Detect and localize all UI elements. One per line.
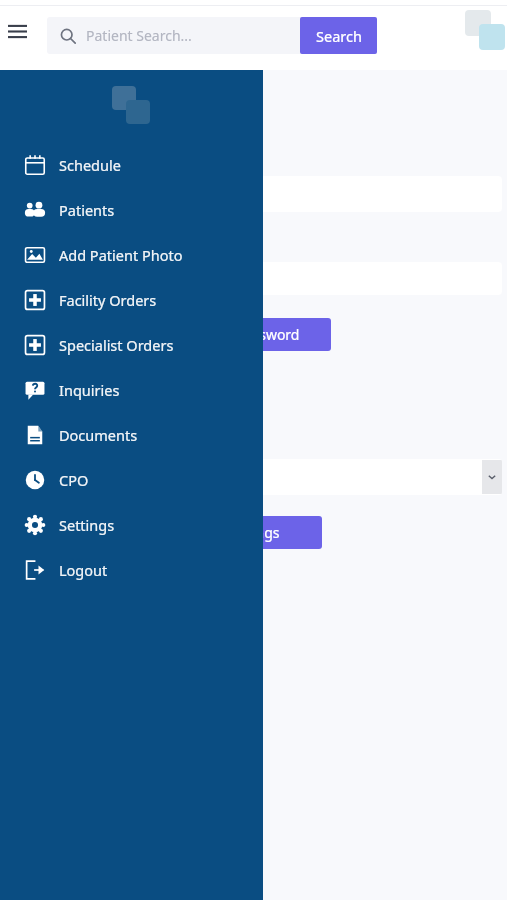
button[interactable]: Search	[300, 17, 377, 54]
button[interactable]: Schedule	[0, 142, 263, 187]
staticText: Patient Search...	[86, 26, 192, 45]
button[interactable]	[150, 176, 502, 212]
button[interactable]: Documents	[0, 412, 263, 457]
staticText: Schedule	[59, 155, 121, 175]
button[interactable]: Settings	[0, 502, 263, 547]
button[interactable]	[150, 262, 502, 295]
staticText: Patients	[59, 200, 115, 220]
staticText: Settings	[59, 515, 115, 535]
button[interactable]	[150, 459, 502, 495]
button[interactable]: Save Settings	[150, 516, 322, 549]
staticText: Add Patient Photo	[59, 245, 183, 265]
button[interactable]: Change Password	[150, 318, 331, 351]
button[interactable]: Patient Search...	[47, 17, 347, 54]
button[interactable]: Inquiries	[0, 367, 263, 412]
staticText: Inquiries	[59, 380, 120, 400]
button[interactable]: CPO	[0, 457, 263, 502]
staticText: Save Settings	[192, 523, 280, 542]
staticText: Search	[316, 26, 362, 46]
button[interactable]: Open navigation menu	[0, 14, 34, 48]
button[interactable]: Logout	[0, 547, 263, 592]
staticText: CPO	[59, 470, 89, 490]
staticText: Specialist Orders	[59, 335, 174, 355]
button[interactable]: Patients	[0, 187, 263, 232]
button[interactable]: Specialist Orders	[0, 322, 263, 367]
button[interactable]: Facility Orders	[0, 277, 263, 322]
staticText: Documents	[59, 425, 138, 445]
staticText: Facility Orders	[59, 290, 157, 310]
staticText: Logout	[59, 560, 108, 580]
button[interactable]: Add Patient Photo	[0, 232, 263, 277]
staticText: Change Password	[182, 325, 300, 344]
